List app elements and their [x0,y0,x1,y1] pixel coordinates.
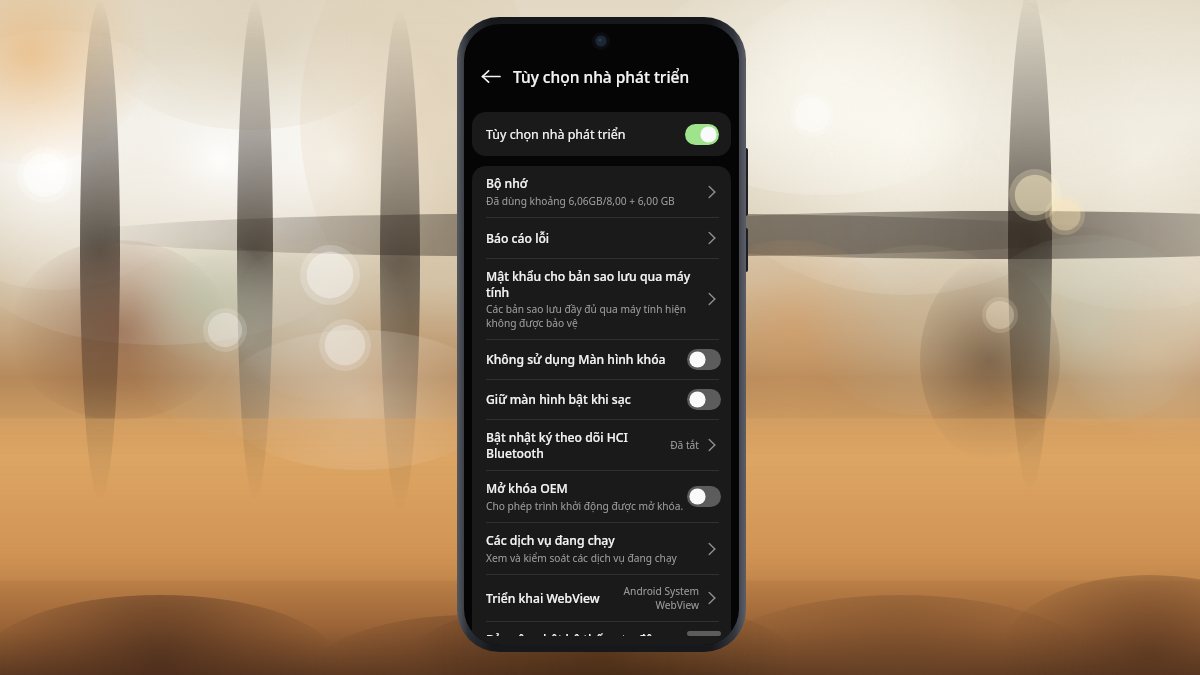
staticText: Đã dùng khoảng 6,06GB/8,00 + 6,00 GB [486,194,675,208]
staticText: Bộ nhớ [486,175,528,192]
staticText: Các bản sao lưu đầy đủ qua máy tính hiện… [486,302,703,330]
button[interactable]: Power [743,228,748,272]
staticText: Báo cáo lỗi [486,230,550,247]
button[interactable]: Bật nhật ký theo dõi HCI Bluetooth [472,420,731,470]
button[interactable]: Mật khẩu cho bản sao lưu qua máy tính [472,259,731,339]
button[interactable]: Các dịch vụ đang chạy [472,523,731,574]
staticText: Mở khóa OEM [486,480,568,497]
button[interactable]: Bản cập nhật hệ thống tự động [472,622,731,645]
button[interactable]: Mở khóa OEM [472,471,731,522]
staticText: Tùy chọn nhà phát triển [513,66,690,87]
staticText: Cho phép trình khởi động được mở khóa. [486,499,684,513]
button[interactable]: Switch off [687,389,721,410]
staticText: Giữ màn hình bật khi sạc [486,391,631,408]
staticText: Triển khai WebView [486,590,600,607]
button[interactable]: Không sử dụng Màn hình khóa [472,340,731,379]
staticText: Không sử dụng Màn hình khóa [486,351,666,368]
staticText: Mật khẩu cho bản sao lưu qua máy tính [486,268,703,300]
button[interactable]: Bộ nhớ [472,166,731,217]
button[interactable]: Volume [743,148,748,216]
button[interactable]: Switch on [685,124,719,145]
staticText: Đã tắt [638,438,699,452]
button[interactable]: Switch off [687,486,721,507]
staticText: Tùy chọn nhà phát triển [486,126,685,143]
staticText: Xem và kiểm soát các dịch vụ đang chạy [486,551,677,565]
button[interactable]: Báo cáo lỗi [472,218,731,258]
button[interactable]: Back [471,57,509,95]
button[interactable]: Triển khai WebView [472,575,731,621]
button[interactable]: Giữ màn hình bật khi sạc [472,380,731,419]
button[interactable]: Tùy chọn nhà phát triển [472,112,731,156]
staticText: Bật nhật ký theo dõi HCI Bluetooth [486,429,638,461]
staticText: Bản cập nhật hệ thống tự động [486,631,669,636]
button[interactable]: Switch off [687,349,721,370]
button[interactable]: Switch off [687,631,721,636]
staticText: Android System WebView [617,584,699,612]
staticText: Các dịch vụ đang chạy [486,532,615,549]
